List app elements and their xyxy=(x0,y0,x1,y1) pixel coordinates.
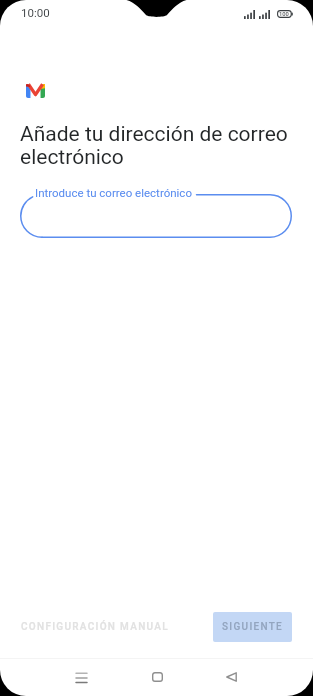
button[interactable]: CONFIGURACIÓN MANUAL xyxy=(10,611,180,643)
button[interactable]: Recent apps xyxy=(61,658,102,696)
staticText: 100 xyxy=(279,11,289,18)
button[interactable]: Back xyxy=(211,658,251,696)
button[interactable]: SIGUIENTE xyxy=(213,612,292,642)
staticText: SIGUIENTE xyxy=(222,621,284,633)
staticText: Añade tu dirección de correo electrónico xyxy=(20,122,292,169)
staticText: 10:00 xyxy=(21,6,50,19)
staticText: CONFIGURACIÓN MANUAL xyxy=(21,621,169,633)
staticText: Introduce tu correo electrónico xyxy=(35,186,192,199)
button[interactable]: Home xyxy=(137,658,177,696)
